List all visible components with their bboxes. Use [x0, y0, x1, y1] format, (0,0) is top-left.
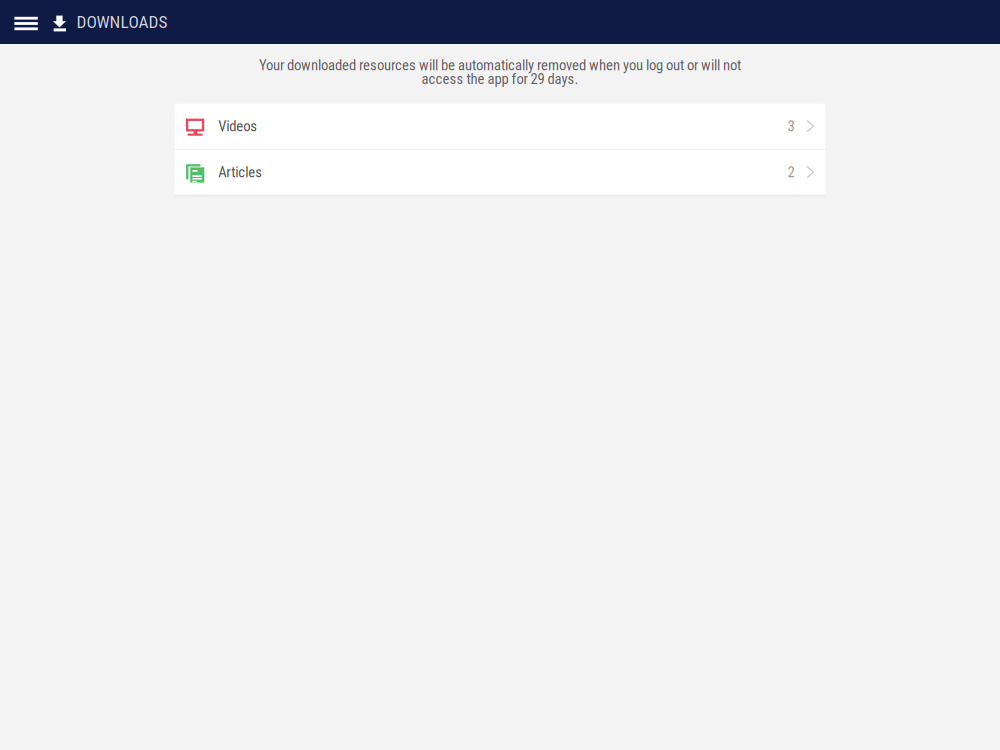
- staticText: Videos: [218, 118, 257, 135]
- button[interactable]: Videos: [174, 104, 825, 149]
- button[interactable]: Menu: [0, 0, 38, 45]
- staticText: DOWNLOADS: [77, 12, 168, 32]
- staticText: access the app for 29 days.: [421, 70, 578, 87]
- staticText: 2: [787, 164, 794, 181]
- staticText: 3: [787, 118, 794, 135]
- button[interactable]: DOWNLOADS: [38, 0, 168, 44]
- staticText: Articles: [218, 164, 262, 181]
- staticText: Your downloaded resources will be automa…: [259, 57, 741, 74]
- button[interactable]: Articles: [174, 150, 825, 195]
